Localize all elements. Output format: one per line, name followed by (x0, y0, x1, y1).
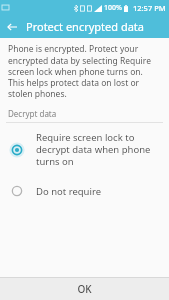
button[interactable]: OK (0, 278, 169, 300)
staticText: Require screen lock to decrypt data when… (36, 131, 159, 168)
staticText: 100% (104, 3, 122, 13)
staticText: 12:57 PM (133, 3, 166, 13)
staticText: Do not require (36, 185, 102, 198)
button[interactable]: Back (0, 15, 23, 38)
button[interactable]: Do not require (0, 179, 169, 203)
staticText: Protect encrypted data (26, 19, 144, 34)
button[interactable]: Require screen lock to decrypt data when… (0, 128, 169, 171)
staticText: Decrypt data (8, 108, 57, 119)
staticText: OK (77, 282, 92, 296)
staticText: Phone is encrypted. Protect your encrypt… (8, 43, 161, 100)
